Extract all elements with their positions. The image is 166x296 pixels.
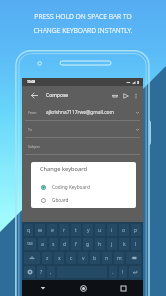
button[interactable]: p	[131, 224, 141, 236]
staticText: y	[87, 227, 90, 234]
button[interactable]: Recent apps	[103, 280, 143, 296]
button[interactable]: x	[54, 252, 64, 264]
staticText: u	[98, 227, 102, 234]
staticText: ajkrishna7117rwe@gmail.com	[46, 109, 114, 116]
staticText: From	[28, 110, 37, 115]
button[interactable]: o	[119, 224, 129, 236]
staticText: s	[52, 241, 55, 248]
button[interactable]: m	[114, 252, 124, 264]
staticText: a	[41, 241, 44, 248]
button[interactable]: y	[83, 224, 93, 236]
staticText: .	[112, 269, 114, 276]
staticText: w	[38, 227, 42, 234]
button[interactable]: Home	[63, 280, 103, 296]
staticText: Change keyboard	[40, 165, 87, 173]
button[interactable]: Settings	[24, 266, 35, 278]
staticText: ,	[50, 269, 52, 276]
button[interactable]: .	[109, 266, 117, 278]
button[interactable]: More options	[131, 91, 140, 100]
button[interactable]: Subject	[22, 138, 143, 154]
staticText: !	[122, 269, 124, 276]
staticText: Subject	[28, 144, 40, 149]
button[interactable]: v	[78, 252, 88, 264]
staticText: n	[105, 255, 109, 262]
button[interactable]: To	[22, 121, 143, 137]
staticText: Gboard	[52, 197, 69, 203]
staticText: m	[117, 255, 122, 262]
button[interactable]: n	[102, 252, 112, 264]
staticText: CHANGE KEYBOARD INSTANTLY.	[33, 26, 133, 35]
staticText: x	[58, 255, 61, 262]
button[interactable]: b	[90, 252, 100, 264]
button[interactable]: h	[95, 238, 105, 250]
staticText: TAB	[27, 242, 33, 246]
button[interactable]: t	[71, 224, 81, 236]
staticText: v	[82, 255, 85, 262]
staticText: t	[75, 227, 77, 234]
staticText: z	[46, 255, 49, 262]
button[interactable]: ?	[37, 266, 45, 278]
button[interactable]: u	[95, 224, 105, 236]
button[interactable]: Attach file	[109, 90, 120, 101]
button[interactable]: Back	[29, 90, 39, 100]
staticText: Compose	[46, 92, 69, 99]
staticText: j	[111, 241, 113, 248]
button[interactable]: g	[83, 238, 93, 250]
button[interactable]: k	[119, 238, 129, 250]
staticText: i	[111, 227, 113, 234]
button[interactable]: Back	[22, 280, 63, 296]
button[interactable]: f	[71, 238, 81, 250]
button[interactable]: c	[66, 252, 76, 264]
staticText: g	[86, 241, 90, 248]
button[interactable]: Enter	[129, 266, 141, 278]
staticText: h	[98, 241, 102, 248]
button[interactable]: Send	[120, 90, 131, 101]
button[interactable]: e	[47, 224, 57, 236]
staticText: c	[70, 255, 73, 262]
staticText: Coding Keyboard	[52, 184, 90, 190]
staticText: b	[93, 255, 97, 262]
staticText: q	[27, 227, 31, 234]
button[interactable]: s	[49, 238, 58, 250]
button[interactable]: d	[60, 238, 69, 250]
button[interactable]: !	[119, 266, 127, 278]
staticText: ?	[40, 269, 43, 276]
button[interactable]: TAB	[24, 238, 36, 250]
staticText: e	[51, 227, 54, 234]
button[interactable]: r	[59, 224, 69, 236]
staticText: d	[63, 241, 67, 248]
staticText: PRESS HOLD ON SPACE BAR TO	[34, 12, 132, 21]
button[interactable]: Shift	[24, 252, 40, 264]
button[interactable]: j	[107, 238, 117, 250]
button[interactable]: From	[22, 104, 143, 120]
button[interactable]: z	[42, 252, 52, 264]
staticText: 10:08	[27, 80, 36, 84]
button[interactable]: i	[107, 224, 117, 236]
button[interactable]: l	[131, 238, 141, 250]
staticText: o	[122, 227, 126, 234]
button[interactable]: w	[35, 224, 45, 236]
staticText: k	[123, 241, 126, 248]
button[interactable]: ,	[47, 266, 55, 278]
staticText: p	[134, 227, 138, 234]
button[interactable]: Gboard	[31, 194, 136, 206]
button[interactable]: a	[38, 238, 47, 250]
button[interactable]: Backspace	[126, 252, 141, 264]
button[interactable]: q	[24, 224, 33, 236]
staticText: l	[135, 241, 137, 248]
staticText: f	[75, 241, 77, 248]
staticText: r	[63, 227, 66, 234]
staticText: To	[28, 127, 32, 132]
button[interactable]: Coding Keyboard	[31, 181, 136, 193]
